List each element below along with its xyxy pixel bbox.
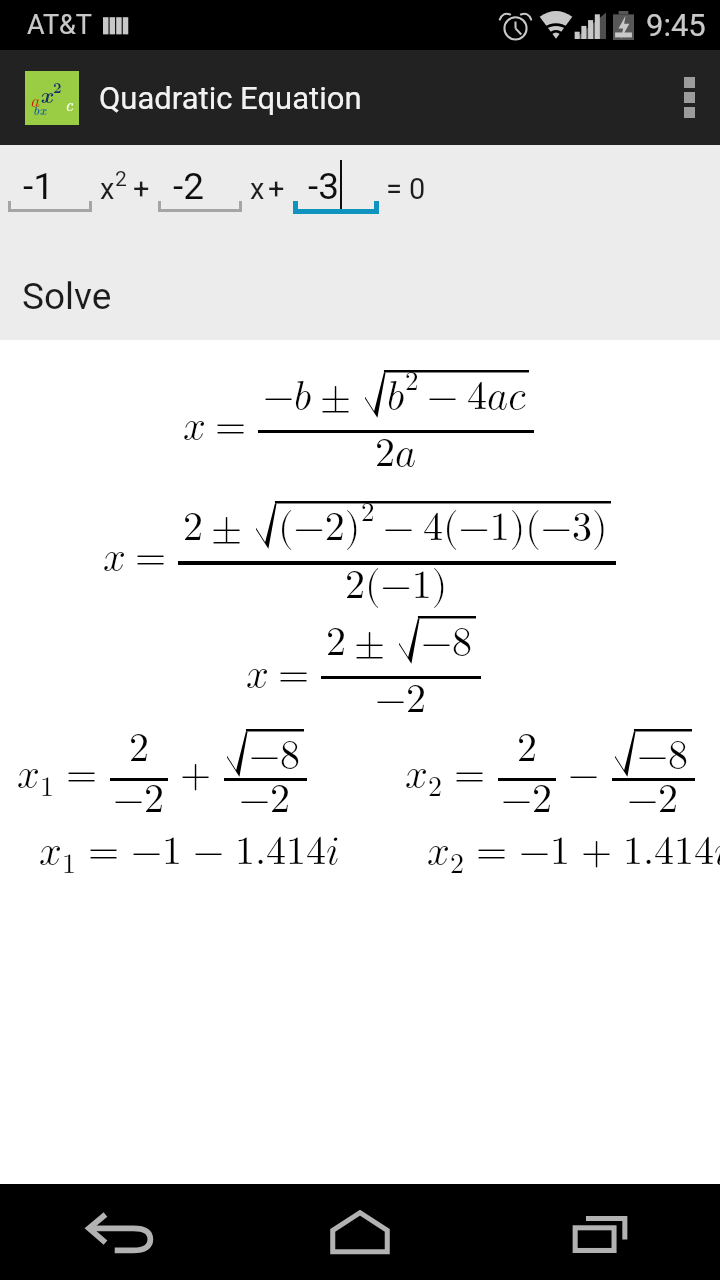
staticText: 1.414𝑖: [235, 832, 340, 872]
staticText: =: [88, 832, 120, 872]
staticText: −1: [519, 832, 571, 872]
staticText: 2: [183, 508, 203, 548]
staticText: -2: [173, 165, 205, 208]
staticText: AT&T: [27, 9, 92, 41]
staticText: 𝑏: [387, 377, 405, 417]
staticText: 4𝑎𝑐: [467, 377, 526, 417]
staticText: −2: [239, 780, 291, 820]
staticText: =: [454, 755, 486, 795]
staticText: 2: [53, 76, 62, 97]
staticText: =: [386, 172, 402, 206]
staticText: −8: [637, 736, 689, 776]
staticText: 2: [361, 499, 375, 526]
staticText: −: [427, 377, 459, 417]
staticText: 2: [115, 167, 127, 192]
staticText: a: [30, 87, 40, 112]
staticText: −: [568, 755, 600, 795]
staticText: −8: [421, 623, 473, 663]
staticText: =: [135, 538, 167, 578]
staticText: c: [65, 92, 73, 116]
staticText: 𝑥: [427, 832, 450, 872]
staticText: 𝑥: [183, 407, 206, 447]
staticText: −2: [627, 780, 679, 820]
button[interactable]: Recent apps: [480, 1184, 720, 1280]
staticText: −2: [375, 680, 427, 720]
button[interactable]: More options: [658, 50, 720, 145]
staticText: +: [268, 172, 285, 206]
button[interactable]: Solve: [0, 235, 720, 340]
staticText: 1: [62, 850, 77, 878]
staticText: bx: [33, 101, 47, 118]
staticText: +: [180, 755, 212, 795]
staticText: Solve: [22, 275, 112, 318]
staticText: 4(−1)(−3): [423, 508, 608, 548]
staticText: 2: [326, 623, 346, 663]
staticText: (−2): [278, 508, 361, 548]
staticText: 1: [40, 773, 55, 801]
staticText: +: [133, 172, 150, 206]
staticText: 𝑥: [39, 832, 62, 872]
staticText: 1.414𝑖: [623, 832, 720, 872]
staticText: 𝑥: [405, 755, 428, 795]
staticText: 𝑥: [246, 655, 269, 695]
staticText: 9:45: [646, 7, 706, 43]
button[interactable]: -1: [8, 157, 92, 219]
staticText: =: [476, 832, 508, 872]
staticText: 2(−1): [345, 566, 448, 606]
staticText: -1: [23, 165, 55, 208]
staticText: x: [250, 172, 265, 206]
staticText: −2: [113, 780, 165, 820]
staticText: ±: [211, 508, 243, 548]
staticText: 2: [428, 773, 443, 801]
staticText: =: [278, 655, 310, 695]
staticText: 2: [450, 850, 465, 878]
staticText: −1: [131, 832, 183, 872]
staticText: −2: [501, 780, 553, 820]
button[interactable]: -2: [158, 157, 242, 219]
staticText: 2𝑎: [375, 434, 417, 474]
staticText: 2: [517, 729, 537, 769]
staticText: ±: [320, 377, 352, 417]
staticText: x: [100, 172, 115, 206]
staticText: =: [66, 755, 98, 795]
staticText: 2: [405, 368, 419, 395]
staticText: x: [40, 78, 53, 110]
staticText: −𝑏: [263, 377, 312, 417]
button[interactable]: -3: [293, 157, 379, 219]
staticText: −: [383, 508, 415, 548]
staticText: −8: [249, 736, 301, 776]
staticText: 2: [129, 729, 149, 769]
button[interactable]: Home: [240, 1184, 480, 1280]
staticText: −: [193, 832, 225, 872]
staticText: ±: [354, 623, 386, 663]
button[interactable]: Back: [0, 1184, 240, 1280]
staticText: -3: [308, 165, 340, 208]
staticText: +: [581, 832, 613, 872]
staticText: Quadratic Equation: [99, 80, 362, 116]
staticText: 0: [409, 172, 426, 206]
staticText: 𝑥: [103, 538, 126, 578]
staticText: =: [215, 407, 247, 447]
staticText: 𝑥: [17, 755, 40, 795]
